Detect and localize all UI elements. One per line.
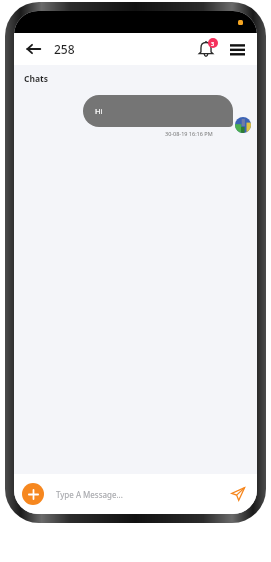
staticText: 258 [54,41,75,57]
button[interactable]: Notifications [193,36,219,62]
button[interactable]: Menu [225,37,249,61]
button[interactable]: Back [22,37,46,61]
staticText: Hi [95,106,103,116]
button[interactable]: Add attachment [22,483,44,505]
staticText: Type A Message... [56,489,123,500]
button[interactable]: Hi [83,95,233,127]
staticText: Chats [24,73,49,85]
staticText: 3 [211,40,215,47]
button[interactable]: Type A Message... [56,474,227,514]
button[interactable]: Avatar [235,117,251,133]
button[interactable]: Send [227,483,249,505]
staticText: 30-08-19 16:16 PM [165,130,213,137]
